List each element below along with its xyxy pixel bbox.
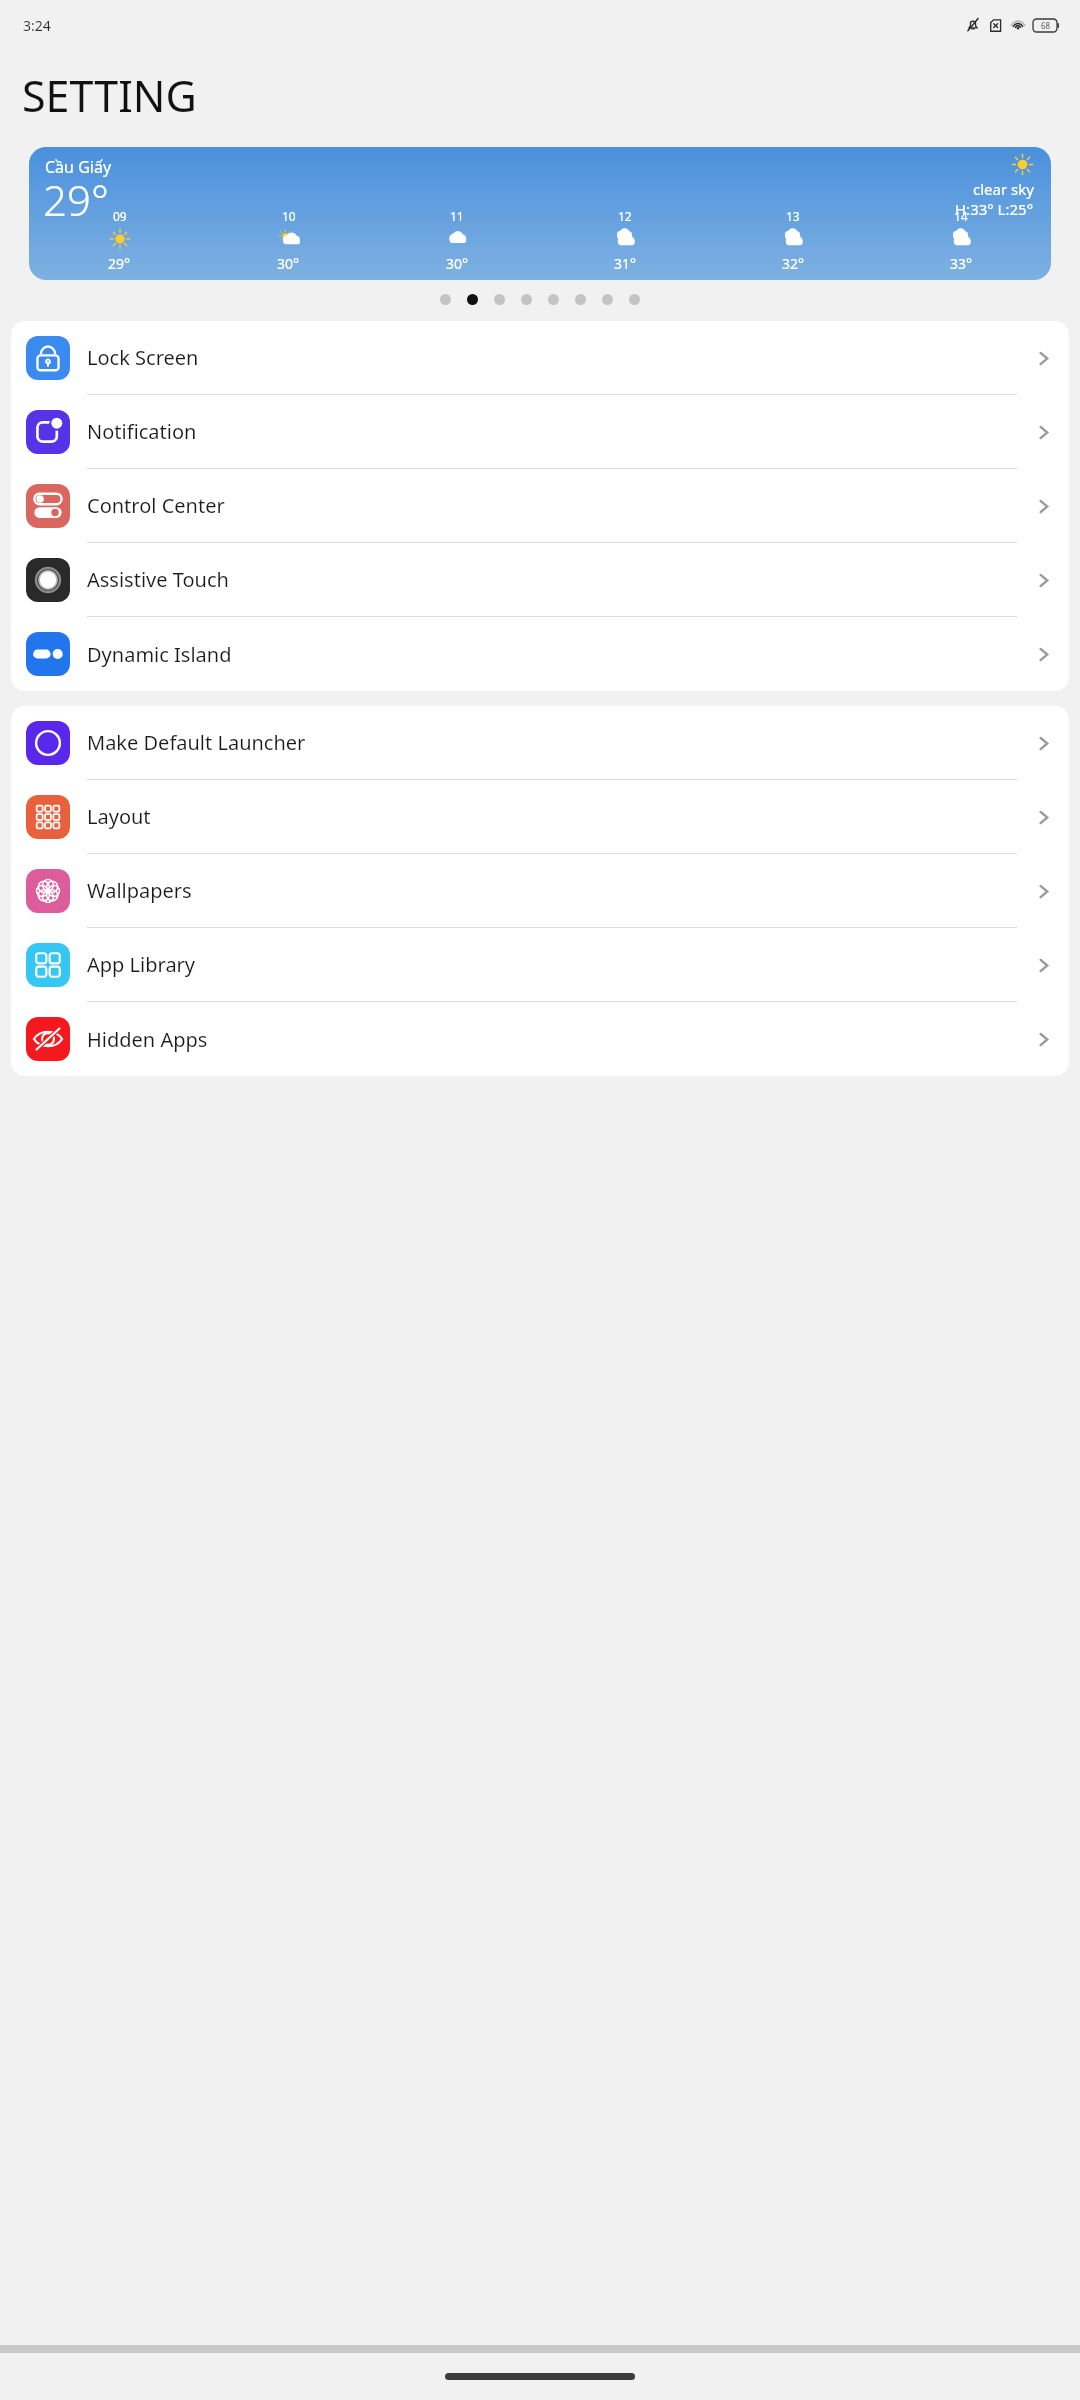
staticText: Cầu Giấy: [45, 156, 112, 178]
button[interactable]: control: [11, 469, 1069, 543]
other: wall: [26, 869, 70, 913]
other: launcher: [26, 721, 70, 765]
staticText: 29°: [43, 171, 109, 228]
staticText: 33°: [950, 254, 973, 273]
other: control: [26, 484, 70, 528]
staticText: Hidden Apps: [87, 1026, 208, 1053]
button[interactable]: applib: [11, 928, 1069, 1002]
other: notif: [26, 410, 70, 454]
staticText: 12: [618, 208, 632, 224]
staticText: 09: [113, 208, 127, 224]
staticText: 29°: [108, 254, 131, 273]
staticText: 30°: [277, 254, 300, 273]
staticText: H:33° L:25°: [955, 199, 1034, 219]
staticText: 30°: [446, 254, 469, 273]
staticText: 14: [954, 208, 968, 224]
button[interactable]: Cầu Giấy: [29, 147, 1051, 280]
button[interactable]: lock: [11, 321, 1069, 395]
staticText: 13: [786, 208, 800, 224]
other: layout: [26, 795, 70, 839]
staticText: 10: [282, 208, 296, 224]
button[interactable]: notif: [11, 395, 1069, 469]
staticText: Wallpapers: [87, 877, 192, 904]
other: lock: [26, 336, 70, 380]
staticText: 68: [1041, 20, 1051, 31]
button[interactable]: wall: [11, 854, 1069, 928]
staticText: 3:24: [23, 16, 51, 35]
staticText: Control Center: [87, 492, 225, 519]
staticText: Notification: [87, 418, 197, 445]
other: assist: [26, 558, 70, 602]
staticText: Make Default Launcher: [87, 729, 306, 756]
staticText: Dynamic Island: [87, 641, 232, 668]
staticText: 31°: [614, 254, 637, 273]
staticText: 11: [450, 208, 464, 224]
other: applib: [26, 943, 70, 987]
staticText: Assistive Touch: [87, 566, 229, 593]
other: hidden: [26, 1017, 70, 1061]
button[interactable]: hidden: [11, 1002, 1069, 1076]
button[interactable]: layout: [11, 780, 1069, 854]
staticText: Layout: [87, 803, 151, 830]
staticText: clear sky: [973, 179, 1034, 199]
button[interactable]: island: [11, 617, 1069, 691]
button[interactable]: assist: [11, 543, 1069, 617]
staticText: Lock Screen: [87, 344, 199, 371]
staticText: SETTING: [22, 66, 197, 125]
other: island: [26, 632, 70, 676]
staticText: App Library: [87, 951, 196, 978]
staticText: 32°: [782, 254, 805, 273]
button[interactable]: launcher: [11, 706, 1069, 780]
